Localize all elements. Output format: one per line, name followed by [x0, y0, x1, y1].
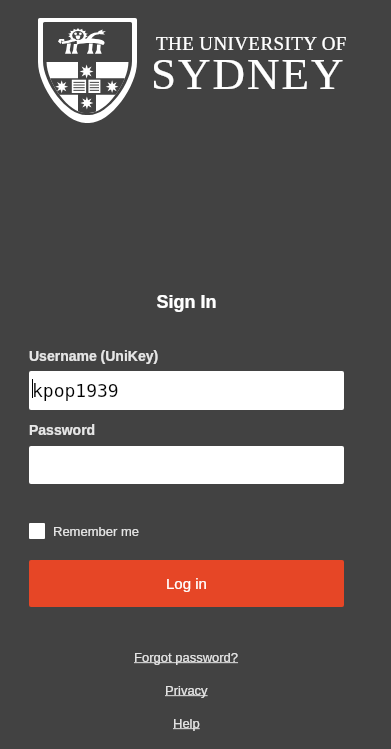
staticText: Remember me: [53, 524, 139, 539]
button[interactable]: Forgot password?: [134, 650, 239, 665]
button[interactable]: Help: [173, 716, 200, 731]
staticText: SYDNEY: [151, 49, 346, 99]
button[interactable]: Privacy: [165, 683, 208, 698]
button[interactable]: Log in: [29, 560, 344, 607]
button[interactable]: kpop1939: [29, 371, 344, 410]
staticText: Username (UniKey): [29, 348, 159, 364]
staticText: Log in: [166, 575, 207, 592]
staticText: Password: [29, 422, 96, 438]
button[interactable]: Remember me: [29, 519, 139, 543]
staticText: THE UNIVERSITY OF: [156, 33, 347, 54]
staticText: Sign In: [29, 292, 344, 312]
staticText: kpop1939: [32, 380, 119, 401]
